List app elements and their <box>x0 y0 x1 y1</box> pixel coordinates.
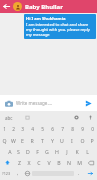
staticText: E <box>21 137 24 144</box>
staticText: 5 <box>41 126 44 133</box>
staticText: N <box>67 159 71 166</box>
button[interactable]: B <box>54 157 64 168</box>
button[interactable]: Emoji <box>22 168 32 179</box>
button[interactable]: Baby Bhullar <box>25 0 97 13</box>
staticText: G <box>45 148 49 155</box>
button[interactable]: P <box>87 135 97 146</box>
staticText: K <box>75 148 79 155</box>
button[interactable]: Voice input <box>83 111 97 124</box>
staticText: O <box>80 137 85 144</box>
button[interactable]: Shift <box>0 157 14 168</box>
button[interactable]: N <box>64 157 74 168</box>
staticText: . <box>78 170 80 177</box>
button[interactable]: M <box>74 157 84 168</box>
button[interactable]: 3 <box>18 124 27 135</box>
staticText: J <box>66 148 68 155</box>
button[interactable]: 6 <box>47 124 57 135</box>
staticText: A <box>8 148 12 155</box>
staticText: Baby Bhullar <box>25 3 63 11</box>
button[interactable]: Q <box>0 135 9 146</box>
staticText: 6 <box>51 126 54 133</box>
button[interactable]: Add photo <box>3 98 14 109</box>
staticText: 9 <box>81 126 84 133</box>
staticText: Hi I am Shubhamia <box>26 16 66 22</box>
staticText: M <box>77 159 82 166</box>
button[interactable]: Z <box>14 157 24 168</box>
button[interactable]: R <box>27 135 37 146</box>
staticText: X <box>27 159 31 166</box>
staticText: C <box>37 159 41 166</box>
staticText: 7 <box>61 126 64 133</box>
staticText: I am interested to chat and share my tho… <box>26 22 94 37</box>
staticText: I <box>71 137 73 144</box>
button[interactable]: 8 <box>67 124 77 135</box>
button[interactable]: H <box>52 146 62 157</box>
button[interactable]: 9 <box>77 124 87 135</box>
button[interactable]: Profile photo <box>13 2 22 11</box>
button[interactable]: J <box>62 146 72 157</box>
button[interactable]: Enter <box>83 168 97 179</box>
staticText: P <box>90 137 94 144</box>
button[interactable]: 1 <box>0 124 9 135</box>
button[interactable]: Send <box>82 97 94 109</box>
button[interactable]: Back <box>0 0 13 13</box>
staticText: 3 <box>21 126 24 133</box>
button[interactable]: U <box>57 135 67 146</box>
staticText: U <box>60 137 64 144</box>
staticText: B <box>57 159 61 166</box>
staticText: F <box>36 148 39 155</box>
button[interactable]: 2 <box>9 124 18 135</box>
button[interactable]: G <box>42 146 52 157</box>
button[interactable]: Settings <box>69 111 83 124</box>
button[interactable]: 4 <box>27 124 37 135</box>
button[interactable]: A <box>5 146 14 157</box>
staticText: D <box>26 148 30 155</box>
button[interactable]: I <box>67 135 77 146</box>
staticText: V <box>47 159 51 166</box>
staticText: R <box>30 137 34 144</box>
button[interactable]: ?123 <box>0 168 13 179</box>
button[interactable]: 0 <box>87 124 97 135</box>
button[interactable]: 5 <box>37 124 47 135</box>
button[interactable]: 7 <box>57 124 67 135</box>
staticText: abc <box>5 115 13 121</box>
staticText: ?123 <box>2 171 11 176</box>
button[interactable]: Hi I am Shubhamia <box>24 14 96 39</box>
staticText: 1 <box>3 126 6 133</box>
button[interactable]: F <box>32 146 42 157</box>
button[interactable]: D <box>23 146 32 157</box>
staticText: 0 <box>91 126 94 133</box>
staticText: H <box>55 148 59 155</box>
button[interactable]: X <box>24 157 34 168</box>
staticText: W <box>11 137 16 144</box>
button[interactable]: T <box>37 135 47 146</box>
staticText: 8 <box>71 126 74 133</box>
staticText: Z <box>18 159 21 166</box>
staticText: , <box>17 170 19 177</box>
button[interactable]: Y <box>47 135 57 146</box>
staticText: Y <box>51 137 54 144</box>
staticText: S <box>17 148 20 155</box>
button[interactable]: W <box>9 135 18 146</box>
button[interactable]: L <box>82 146 92 157</box>
staticText: Q <box>2 137 7 144</box>
button[interactable]: Write message.... <box>16 95 82 111</box>
staticText: L <box>86 148 89 155</box>
button[interactable]: S <box>14 146 23 157</box>
button[interactable]: K <box>72 146 82 157</box>
button[interactable]: Comma <box>13 168 22 179</box>
button[interactable]: abc <box>0 111 18 124</box>
button[interactable]: V <box>44 157 54 168</box>
button[interactable]: Backspace <box>84 157 97 168</box>
button[interactable]: O <box>77 135 87 146</box>
button[interactable]: Clipboard <box>18 111 36 124</box>
button[interactable]: C <box>34 157 44 168</box>
button[interactable]: E <box>18 135 27 146</box>
staticText: Write message.... <box>16 100 53 106</box>
button[interactable]: Period <box>74 168 83 179</box>
staticText: 2 <box>12 126 15 133</box>
staticText: 4 <box>31 126 34 133</box>
staticText: T <box>41 137 44 144</box>
